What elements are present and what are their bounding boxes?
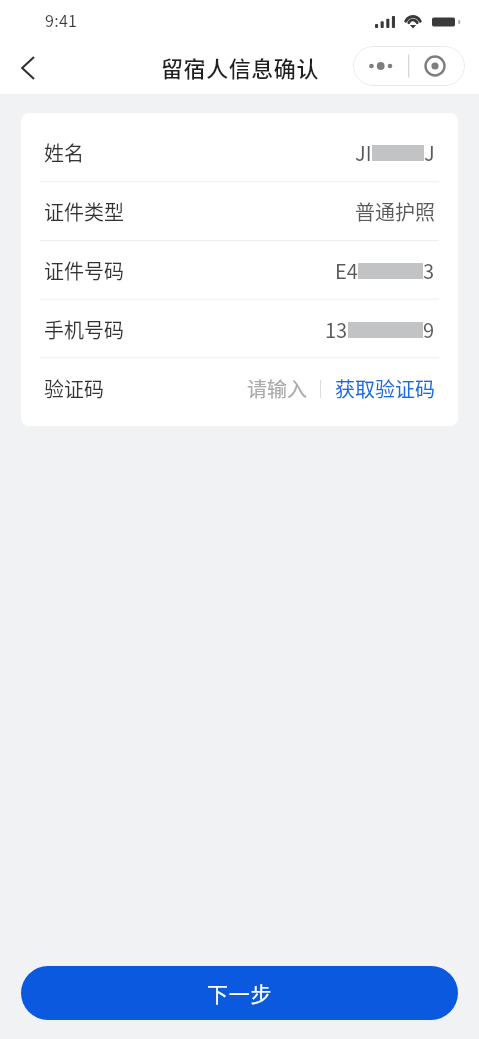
button[interactable]: 手机号码: [44, 300, 435, 359]
button[interactable]: 下一步: [21, 966, 458, 1020]
button[interactable]: 更多菜单: [353, 46, 465, 86]
button[interactable]: 验证码: [44, 359, 435, 418]
staticText: 请输入: [247, 374, 307, 403]
staticText: J: [424, 138, 435, 167]
staticText: 获取验证码: [335, 374, 435, 403]
staticText: 证件号码: [44, 256, 124, 285]
button[interactable]: 证件类型: [44, 182, 435, 241]
staticText: 9:41: [45, 8, 78, 31]
staticText: 普通护照: [355, 197, 435, 226]
staticText: 3: [423, 256, 435, 285]
staticText: 9: [423, 315, 435, 344]
staticText: 姓名: [44, 138, 84, 167]
button[interactable]: 返回: [6, 46, 50, 90]
staticText: JI: [355, 138, 372, 167]
staticText: 留宿人信息确认: [161, 51, 319, 83]
staticText: 下一步: [207, 978, 273, 1008]
button[interactable]: 获取验证码: [335, 374, 435, 403]
staticText: 证件类型: [44, 197, 124, 226]
staticText: 13: [325, 315, 348, 344]
staticText: E4: [335, 256, 358, 285]
staticText: 手机号码: [44, 315, 124, 344]
button[interactable]: 证件号码: [44, 241, 435, 300]
staticText: 验证码: [44, 374, 104, 403]
button[interactable]: 姓名: [44, 123, 435, 182]
